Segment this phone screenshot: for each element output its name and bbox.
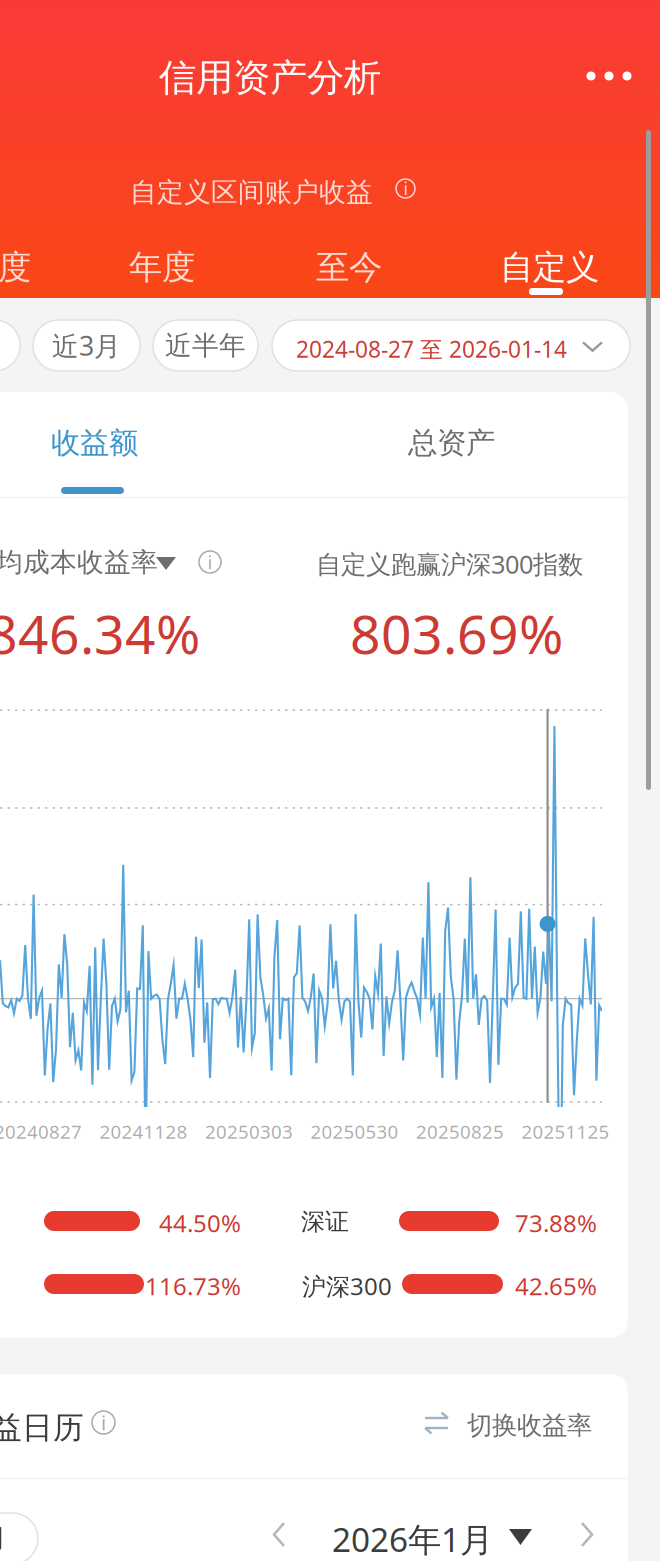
staticText: 42.65% <box>515 1270 597 1302</box>
staticText: 沪深300 <box>302 1270 392 1302</box>
button[interactable]: 度 <box>0 247 44 313</box>
staticText: 20251125 <box>521 1119 609 1144</box>
button[interactable]: 总资产 <box>408 392 578 497</box>
button[interactable]: 切换收益率 <box>423 1398 613 1448</box>
button[interactable]: 近半年 <box>153 320 258 371</box>
staticText: 深证 <box>301 1207 349 1236</box>
staticText: 近半年 <box>165 329 246 362</box>
staticText: 月 <box>0 1522 7 1555</box>
staticText: 20250303 <box>205 1119 293 1144</box>
staticText: 20241128 <box>99 1119 187 1144</box>
staticText: 1846.34% <box>0 598 200 669</box>
button[interactable]: 收益额 <box>51 392 221 497</box>
button[interactable]: 至今 <box>301 247 393 313</box>
staticText: 自定义区间账户收益 <box>130 176 373 209</box>
staticText: 近3月 <box>52 328 121 363</box>
button[interactable]: 2024-08-27 至 2026-01-14 <box>272 320 630 371</box>
staticText: 自定义跑赢沪深300指数 <box>316 547 583 581</box>
staticText: 44.50% <box>159 1207 241 1239</box>
staticText: 平均成本收益率 <box>0 546 158 579</box>
staticText: 收益额 <box>51 425 138 461</box>
staticText: 20240827 <box>0 1119 82 1144</box>
button[interactable]: 月 <box>0 320 20 371</box>
staticText: 2024-08-27 至 2026-01-14 <box>296 334 567 364</box>
button[interactable]: Next month <box>578 1521 596 1548</box>
staticText: 收益日历 <box>0 1409 84 1447</box>
staticText: 20250825 <box>416 1119 504 1144</box>
staticText: 年度 <box>129 247 195 288</box>
button[interactable]: More options <box>570 48 648 104</box>
button[interactable]: 月 <box>0 1513 38 1561</box>
staticText: 2026年1月 <box>332 1517 493 1561</box>
button[interactable]: Previous month <box>270 1521 288 1548</box>
staticText: 切换收益率 <box>467 1410 592 1441</box>
button[interactable]: 自定义 <box>485 247 607 313</box>
staticText: 20250530 <box>310 1119 398 1144</box>
staticText: 116.73% <box>145 1270 241 1302</box>
staticText: i <box>101 1409 106 1436</box>
button[interactable]: 年度 <box>114 247 206 313</box>
staticText: 总资产 <box>408 425 495 461</box>
staticText: 73.88% <box>515 1207 597 1239</box>
staticText: 803.69% <box>350 598 563 669</box>
staticText: 自定义 <box>500 247 599 288</box>
staticText: i <box>207 550 212 574</box>
staticText: 信用资产分析 <box>159 55 381 101</box>
staticText: i <box>403 177 407 200</box>
button[interactable]: 近3月 <box>33 320 140 371</box>
staticText: 度 <box>0 247 31 288</box>
staticText: 至今 <box>316 247 382 288</box>
